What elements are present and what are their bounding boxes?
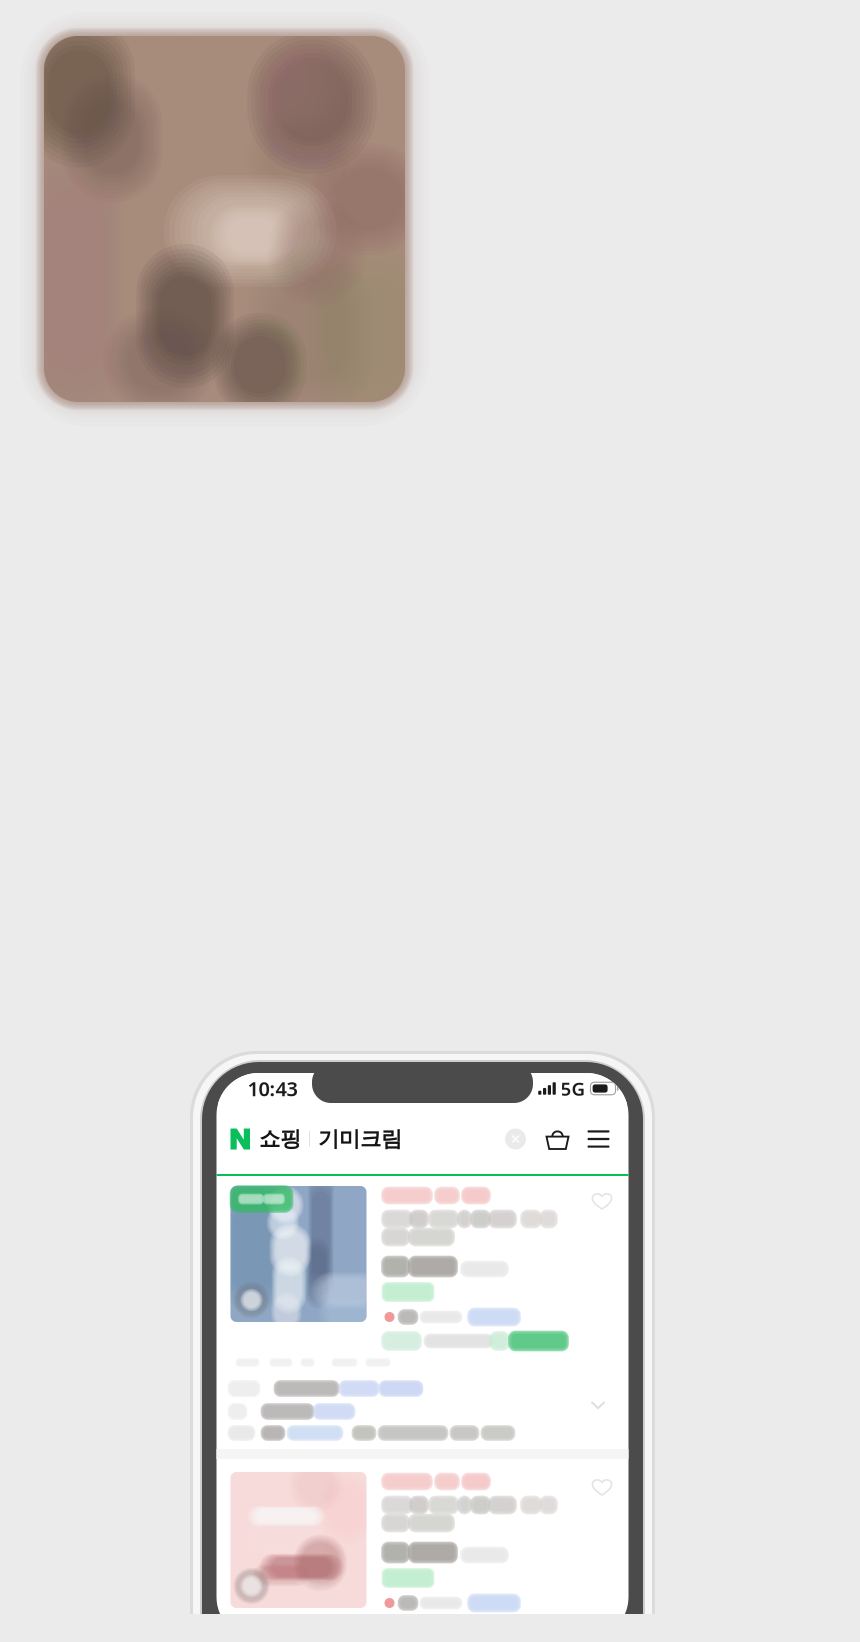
button[interactable]: Menu xyxy=(586,1127,610,1151)
button[interactable] xyxy=(216,1459,628,1623)
button[interactable] xyxy=(216,1176,628,1354)
button[interactable] xyxy=(216,1354,628,1449)
button[interactable]: 쇼핑 xyxy=(230,1126,301,1152)
button[interactable]: Clear search xyxy=(503,1127,527,1151)
button[interactable]: Shopping cart xyxy=(545,1127,569,1151)
staticText: 쇼핑 xyxy=(259,1126,301,1152)
staticText: 기미크림 xyxy=(318,1126,402,1152)
staticText: 10:43 xyxy=(247,1075,297,1102)
staticText: 5G xyxy=(560,1076,585,1101)
